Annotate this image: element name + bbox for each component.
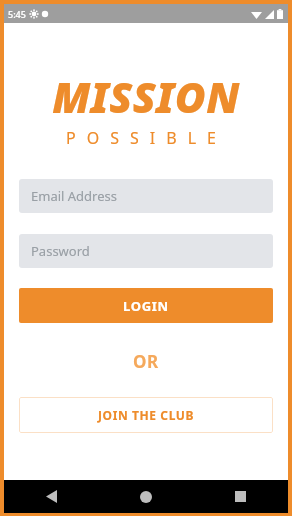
button[interactable]: Password (19, 234, 273, 268)
staticText: OR (133, 350, 159, 373)
button[interactable]: LOGIN (19, 288, 273, 323)
button[interactable]: Back (4, 480, 98, 513)
button[interactable]: Recent apps (193, 480, 288, 513)
staticText: LOGIN (123, 297, 169, 315)
staticText: Email Address (31, 187, 117, 205)
staticText: MISSION (52, 68, 240, 125)
button[interactable]: JOIN THE CLUB (19, 397, 273, 433)
staticText: Password (31, 242, 90, 260)
staticText: 5:45 (8, 8, 26, 20)
button[interactable]: Home (98, 480, 193, 513)
staticText: POSSIBLE (66, 127, 227, 149)
staticText: JOIN THE CLUB (98, 407, 195, 423)
button[interactable]: Email Address (19, 179, 273, 213)
